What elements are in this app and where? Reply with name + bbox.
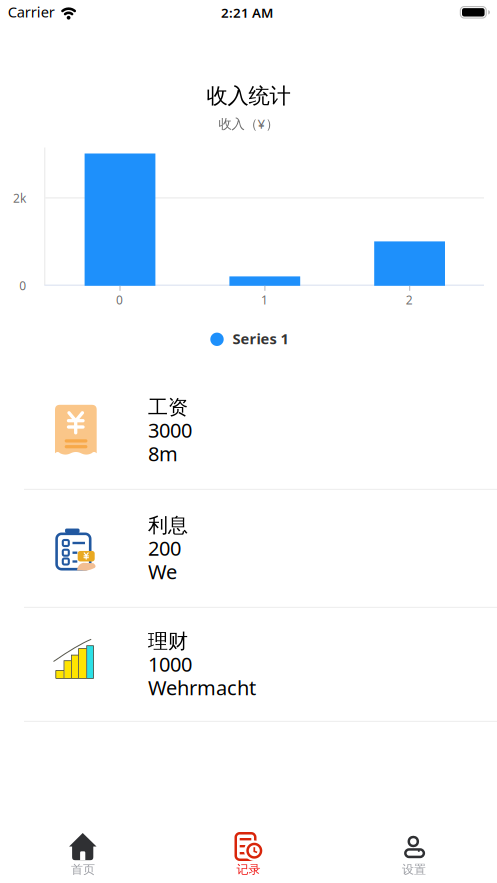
staticText: Carrier bbox=[8, 2, 55, 22]
staticText: 利息 bbox=[148, 513, 188, 538]
staticText: 收入（¥） bbox=[218, 115, 278, 132]
staticText: 2:21 AM bbox=[221, 4, 273, 21]
staticText: 设置 bbox=[402, 862, 426, 877]
staticText: 工资 bbox=[148, 395, 188, 420]
staticText: 2k bbox=[13, 190, 26, 206]
staticText: 首页 bbox=[71, 862, 95, 877]
staticText: Wehrmacht bbox=[148, 674, 256, 701]
staticText: 0 bbox=[116, 292, 123, 308]
staticText: 2 bbox=[406, 292, 413, 308]
staticText: 200 bbox=[148, 535, 181, 561]
staticText: 收入统计 bbox=[206, 83, 290, 109]
button[interactable]: 理财 bbox=[0, 608, 497, 722]
button[interactable]: 记录 bbox=[166, 820, 331, 883]
staticText: 理财 bbox=[148, 629, 188, 654]
staticText: Series 1 bbox=[232, 329, 288, 348]
staticText: 记录 bbox=[236, 862, 260, 877]
staticText: 0 bbox=[19, 278, 26, 293]
staticText: 3000 bbox=[148, 417, 192, 443]
button[interactable]: 设置 bbox=[331, 820, 497, 883]
button[interactable]: 工资 bbox=[0, 372, 497, 490]
staticText: 1 bbox=[261, 292, 268, 308]
button[interactable]: 首页 bbox=[0, 820, 166, 883]
button[interactable]: 利息 bbox=[0, 490, 497, 608]
staticText: 1000 bbox=[148, 651, 192, 677]
staticText: 8m bbox=[148, 440, 178, 467]
staticText: We bbox=[148, 558, 177, 585]
